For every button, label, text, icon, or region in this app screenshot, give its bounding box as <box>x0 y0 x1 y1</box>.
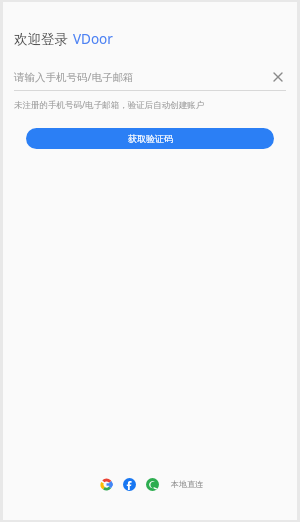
staticText: 获取验证码 <box>128 133 173 144</box>
staticText: 请输入手机号码/电子邮箱 <box>14 70 270 84</box>
button[interactable]: 获取验证码 <box>26 128 274 149</box>
button[interactable]: Sign in with WeChat <box>143 475 161 493</box>
button[interactable]: Clear text <box>270 69 286 85</box>
staticText: 未注册的手机号码/电子邮箱，验证后自动创建账户 <box>14 99 205 111</box>
staticText: 本地直连 <box>171 479 203 489</box>
staticText: 欢迎登录 <box>14 31 68 48</box>
staticText: VDoor <box>73 30 113 48</box>
button[interactable]: 请输入手机号码/电子邮箱 <box>14 67 286 87</box>
button[interactable]: Sign in with Google <box>97 475 115 493</box>
button[interactable]: Sign in with Facebook <box>120 475 138 493</box>
